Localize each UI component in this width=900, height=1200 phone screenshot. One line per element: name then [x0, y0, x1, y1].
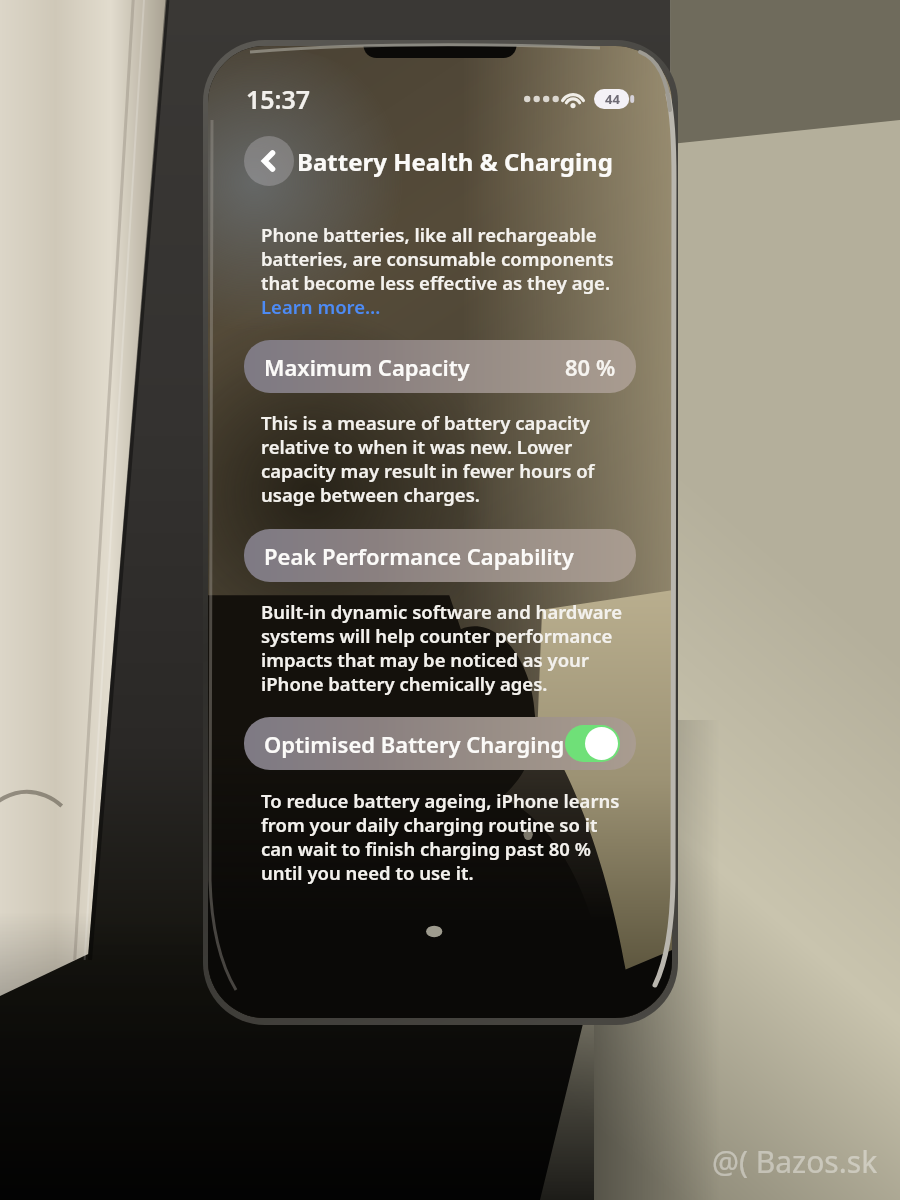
button[interactable]: Optimised Battery Charging [244, 717, 636, 770]
staticText: Optimised Battery Charging [264, 729, 565, 759]
staticText: 44 [605, 90, 620, 108]
button[interactable]: Optimised Battery Charging toggle, on [565, 725, 620, 762]
staticText: Battery Health & Charging [297, 145, 613, 178]
button[interactable]: Back [244, 136, 294, 186]
staticText: This is a measure of battery capacity re… [261, 410, 624, 507]
staticText: 80 % [565, 352, 616, 382]
staticText: Peak Performance Capability [264, 541, 574, 571]
staticText: To reduce battery ageing, iPhone learns … [261, 788, 624, 885]
button[interactable]: Maximum Capacity [244, 340, 636, 393]
button[interactable]: Peak Performance Capability [244, 529, 636, 582]
staticText: Maximum Capacity [264, 352, 470, 382]
staticText: @( Bazos.sk [712, 1141, 878, 1182]
staticText: Built-in dynamic software and hardware s… [261, 599, 624, 696]
staticText: Phone batteries, like all rechargeable b… [261, 222, 624, 319]
staticText: 15:37 [246, 82, 311, 116]
